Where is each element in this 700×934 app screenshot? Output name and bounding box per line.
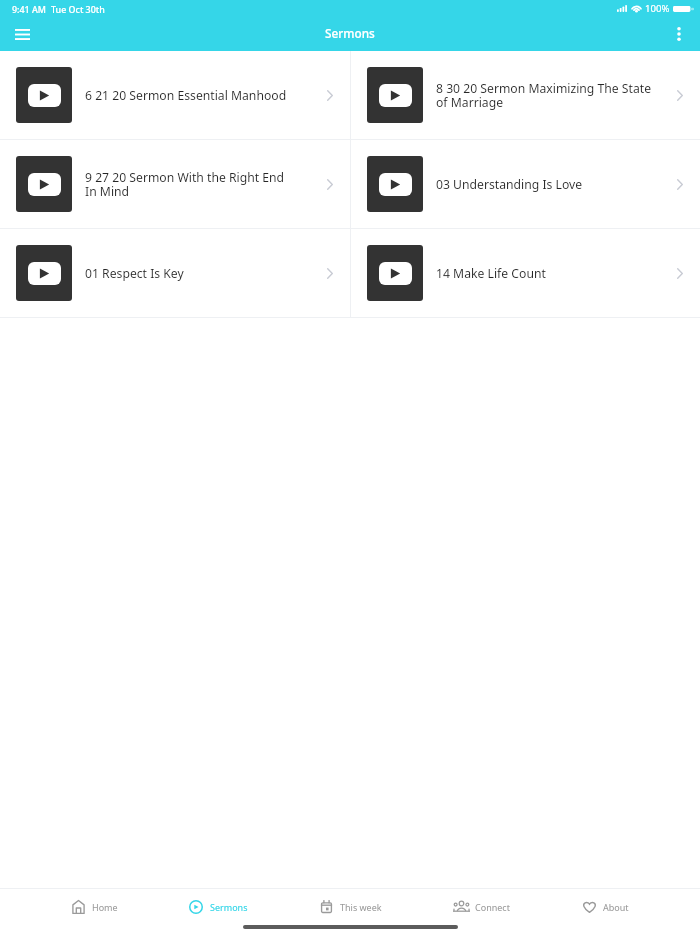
staticText: Home — [92, 901, 118, 913]
staticText: 9:41 AM — [12, 3, 46, 15]
button[interactable]: 01 Respect Is Key — [0, 229, 350, 317]
staticText: Tue Oct 30th — [51, 3, 105, 15]
button[interactable]: This week — [320, 889, 382, 925]
button[interactable]: Open navigation menu — [0, 17, 44, 51]
staticText: 14 Make Life Count — [436, 265, 656, 282]
button[interactable]: 6 21 20 Sermon Essential Manhood — [0, 51, 350, 139]
button[interactable]: 9 27 20 Sermon With the Right End In Min… — [0, 140, 350, 228]
staticText: Sermons — [325, 25, 375, 41]
staticText: 6 21 20 Sermon Essential Manhood — [85, 87, 290, 104]
button[interactable]: 03 Understanding Is Love — [351, 140, 700, 228]
staticText: 100% — [645, 2, 670, 15]
staticText: Sermons — [210, 901, 248, 913]
staticText: About — [603, 901, 629, 913]
button[interactable]: Connect — [453, 889, 510, 925]
button[interactable]: 8 30 20 Sermon Maximizing The State of M… — [351, 51, 700, 139]
staticText: 8 30 20 Sermon Maximizing The State of M… — [436, 80, 656, 110]
staticText: Connect — [475, 901, 510, 913]
staticText: 03 Understanding Is Love — [436, 176, 656, 193]
button[interactable]: Sermons — [189, 889, 248, 925]
button[interactable]: Home — [72, 889, 118, 925]
button[interactable]: 14 Make Life Count — [351, 229, 700, 317]
button[interactable]: More options — [658, 17, 700, 51]
staticText: 9 27 20 Sermon With the Right End In Min… — [85, 169, 290, 199]
button[interactable]: About — [582, 889, 629, 925]
staticText: 01 Respect Is Key — [85, 265, 290, 282]
staticText: This week — [340, 901, 382, 913]
